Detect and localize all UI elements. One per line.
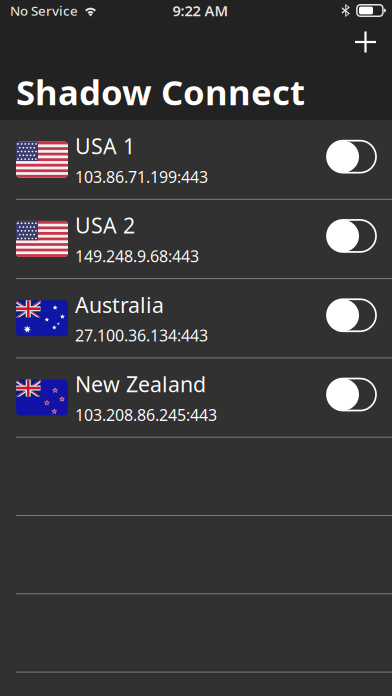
staticText: No Service — [10, 2, 78, 19]
button[interactable]: Australia — [0, 279, 392, 357]
staticText: New Zealand — [75, 370, 206, 398]
button[interactable]: Add server — [347, 20, 384, 57]
staticText: Shadow Connect — [16, 69, 305, 115]
staticText: USA 1 — [75, 132, 135, 160]
staticText: 103.86.71.199:443 — [75, 166, 208, 187]
button[interactable]: USA 2 — [0, 200, 392, 278]
staticText: 103.208.86.245:443 — [75, 404, 217, 425]
button[interactable]: USA 1 — [0, 120, 392, 199]
staticText: USA 2 — [75, 211, 135, 239]
button[interactable]: New Zealand — [0, 358, 392, 437]
staticText: 149.248.9.68:443 — [75, 245, 199, 267]
staticText: 9:22 AM — [172, 1, 228, 20]
staticText: Australia — [75, 290, 164, 319]
staticText: 27.100.36.134:443 — [75, 325, 208, 346]
